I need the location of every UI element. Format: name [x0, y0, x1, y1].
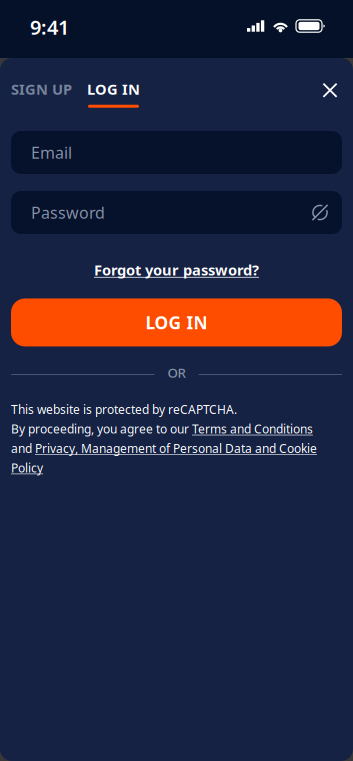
staticText: Email	[31, 142, 72, 163]
staticText: Policy	[11, 460, 43, 476]
button[interactable]: Close	[308, 68, 352, 112]
staticText: SIGN UP	[11, 79, 72, 99]
button[interactable]: Show password	[311, 203, 329, 221]
staticText: Forgot your password?	[94, 260, 259, 279]
button[interactable]: SIGN UP	[0, 55, 82, 113]
staticText: LOG IN	[87, 79, 140, 99]
staticText: This website is protected by reCAPTCHA.	[11, 401, 237, 417]
button[interactable]: LOG IN	[82, 55, 150, 113]
staticText: LOG IN	[145, 311, 207, 334]
button[interactable]: Policy	[11, 460, 43, 476]
staticText: 9:41	[30, 14, 69, 40]
staticText: and Privacy, Management of Personal Data…	[11, 440, 317, 456]
staticText: OR	[167, 364, 185, 381]
staticText: Password	[31, 202, 105, 223]
staticText: By proceeding, you agree to our Terms an…	[11, 421, 313, 437]
button[interactable]: LOG IN	[11, 298, 342, 346]
button[interactable]: Forgot your password?	[0, 258, 353, 281]
